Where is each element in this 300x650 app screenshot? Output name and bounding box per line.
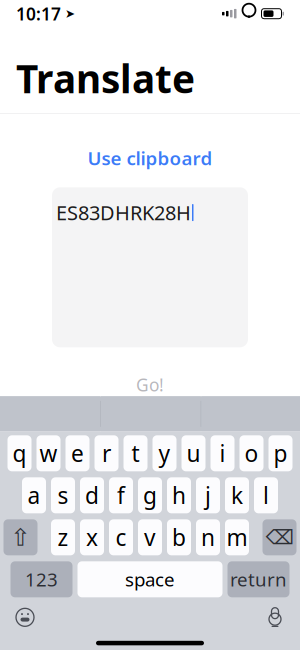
- staticText: f: [117, 480, 125, 510]
- button[interactable]: i: [210, 435, 234, 471]
- staticText: v: [144, 522, 156, 552]
- button[interactable]: m: [225, 519, 249, 555]
- button[interactable]: g: [138, 477, 162, 513]
- staticText: Use clipboard: [87, 145, 212, 170]
- staticText: y: [158, 438, 170, 468]
- button[interactable]: o: [239, 435, 263, 471]
- staticText: q: [12, 438, 26, 468]
- staticText: Translate: [16, 53, 195, 104]
- button[interactable]: y: [152, 435, 176, 471]
- staticText: m: [226, 522, 247, 552]
- button[interactable]: r: [94, 435, 118, 471]
- staticText: r: [102, 438, 111, 468]
- button[interactable]: u: [181, 435, 205, 471]
- staticText: 123: [25, 567, 58, 592]
- button[interactable]: k: [225, 477, 249, 513]
- staticText: w: [39, 438, 57, 468]
- button[interactable]: w: [36, 435, 60, 471]
- button[interactable]: l: [254, 477, 278, 513]
- button[interactable]: p: [268, 435, 292, 471]
- button[interactable]: x: [80, 519, 104, 555]
- staticText: u: [186, 438, 200, 468]
- staticText: ES83DHRK28H: [56, 199, 191, 226]
- button[interactable]: c: [109, 519, 133, 555]
- staticText: j: [205, 480, 211, 510]
- button[interactable]: Emoji: [8, 602, 42, 632]
- staticText: p: [273, 438, 287, 468]
- staticText: h: [172, 480, 186, 510]
- button[interactable]: d: [80, 477, 104, 513]
- button[interactable]: t: [123, 435, 147, 471]
- staticText: l: [263, 480, 269, 510]
- staticText: x: [86, 522, 98, 552]
- staticText: d: [85, 480, 99, 510]
- staticText: b: [172, 522, 186, 552]
- button[interactable]: v: [138, 519, 162, 555]
- button[interactable]: e: [65, 435, 89, 471]
- staticText: i: [219, 438, 225, 468]
- staticText: s: [57, 480, 68, 510]
- staticText: ⌫: [265, 526, 293, 549]
- staticText: return: [230, 567, 287, 592]
- button[interactable]: j: [196, 477, 220, 513]
- staticText: Go!: [136, 373, 164, 396]
- button[interactable]: 123: [10, 561, 72, 597]
- button[interactable]: return: [227, 561, 289, 597]
- button[interactable]: n: [196, 519, 220, 555]
- staticText: ⇧: [10, 524, 30, 551]
- staticText: t: [131, 438, 139, 468]
- staticText: o: [244, 438, 258, 468]
- staticText: ➤: [61, 7, 75, 20]
- staticText: g: [143, 480, 157, 510]
- button[interactable]: space: [77, 561, 222, 597]
- button[interactable]: Dictate: [258, 602, 292, 632]
- staticText: e: [71, 438, 84, 468]
- button[interactable]: f: [109, 477, 133, 513]
- button[interactable]: z: [51, 519, 75, 555]
- staticText: 10:17: [16, 2, 61, 25]
- button[interactable]: a: [22, 477, 46, 513]
- staticText: c: [115, 522, 126, 552]
- staticText: z: [57, 522, 68, 552]
- button[interactable]: q: [7, 435, 31, 471]
- staticText: k: [231, 480, 243, 510]
- button[interactable]: s: [51, 477, 75, 513]
- button[interactable]: b: [167, 519, 191, 555]
- button[interactable]: Delete: [262, 519, 296, 555]
- staticText: space: [125, 567, 175, 592]
- button[interactable]: Use clipboard: [77, 141, 222, 174]
- button[interactable]: h: [167, 477, 191, 513]
- staticText: a: [27, 480, 40, 510]
- button[interactable]: Shift: [3, 519, 37, 555]
- staticText: n: [201, 522, 215, 552]
